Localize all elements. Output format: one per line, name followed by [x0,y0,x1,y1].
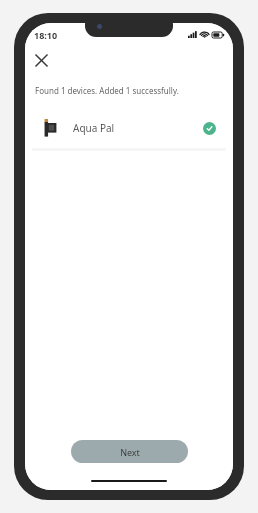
button[interactable]: Next [71,440,188,463]
other: Added [203,122,216,135]
staticText: Found 1 devices. Added 1 successfully. [35,85,179,96]
staticText: 18:10 [34,29,58,41]
button[interactable]: Aqua Pal [32,108,226,148]
button[interactable]: Close [29,48,53,72]
staticText: Aqua Pal [73,121,115,135]
staticText: Next [120,446,140,458]
